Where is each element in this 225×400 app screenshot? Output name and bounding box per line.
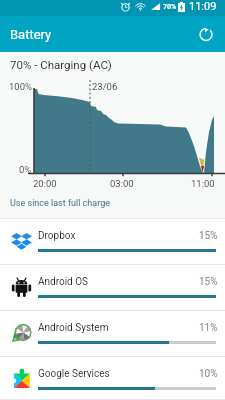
staticText: Android System — [38, 322, 109, 334]
staticText: 15% — [199, 276, 218, 288]
staticText: 15% — [199, 230, 218, 242]
staticText: Google Services — [38, 368, 110, 380]
button[interactable]: Refresh — [194, 22, 218, 46]
staticText: 0% — [19, 164, 32, 175]
staticText: 20:00 — [33, 178, 57, 189]
staticText: 10% — [199, 368, 218, 380]
staticText: 11% — [199, 322, 218, 334]
button[interactable]: Android System — [0, 311, 225, 357]
button[interactable]: Google Services — [0, 357, 225, 400]
staticText: Battery — [10, 27, 52, 42]
staticText: 11:00 — [191, 178, 215, 189]
button[interactable]: Android OS — [0, 265, 225, 311]
button[interactable]: Use since last full charge — [10, 198, 110, 209]
staticText: 03:00 — [110, 178, 134, 189]
staticText: 70% — [163, 3, 177, 11]
staticText: Dropbox — [38, 230, 76, 242]
staticText: 23/06 — [92, 81, 118, 92]
button[interactable]: Dropbox — [0, 219, 225, 265]
staticText: 11:09 — [189, 0, 217, 13]
staticText: Android OS — [38, 276, 89, 288]
staticText: 70% - Charging (AC) — [10, 58, 112, 71]
staticText: 100% — [9, 81, 32, 92]
